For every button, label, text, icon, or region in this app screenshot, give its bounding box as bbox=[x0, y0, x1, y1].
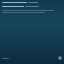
button[interactable] bbox=[2, 2, 62, 7]
button[interactable] bbox=[2, 10, 62, 13]
button[interactable] bbox=[2, 58, 9, 59]
button[interactable]: Action bbox=[58, 56, 62, 60]
